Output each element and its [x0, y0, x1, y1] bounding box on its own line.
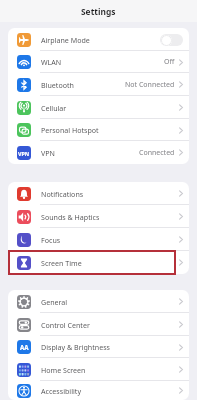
- staticText: VPN: [18, 150, 30, 157]
- staticText: Connected: [139, 148, 175, 158]
- button[interactable]: Personal Hotspot: [8, 119, 189, 141]
- staticText: Cellular: [41, 103, 67, 113]
- button[interactable]: Control Center: [8, 313, 189, 336]
- button[interactable]: Home Screen: [8, 358, 189, 381]
- staticText: Airplane Mode: [41, 35, 90, 45]
- button[interactable]: Focus: [8, 228, 189, 251]
- button[interactable]: VPN: [8, 141, 189, 164]
- button[interactable]: Bluetooth: [8, 73, 189, 96]
- staticText: Notifications: [41, 189, 84, 199]
- staticText: VPN: [41, 148, 55, 158]
- staticText: Control Center: [41, 320, 90, 330]
- staticText: Display & Brightness: [41, 342, 110, 352]
- button[interactable]: WLAN: [8, 51, 189, 73]
- staticText: Sounds & Haptics: [41, 212, 100, 222]
- staticText: Off: [164, 57, 175, 67]
- staticText: WLAN: [41, 57, 62, 67]
- staticText: Settings: [81, 6, 116, 17]
- button[interactable]: Accessibility: [8, 381, 189, 400]
- staticText: Screen Time: [41, 258, 82, 268]
- staticText: General: [41, 297, 68, 307]
- staticText: Focus: [41, 235, 61, 245]
- button[interactable]: AA: [8, 336, 189, 358]
- staticText: Not Connected: [125, 80, 175, 90]
- staticText: Personal Hotspot: [41, 125, 99, 135]
- staticText: Home Screen: [41, 365, 86, 375]
- button[interactable]: Cellular: [8, 96, 189, 119]
- button[interactable]: Airplane Mode: [8, 28, 189, 51]
- button[interactable]: General: [8, 290, 189, 313]
- staticText: AA: [20, 343, 29, 351]
- button[interactable]: Notifications: [8, 182, 189, 205]
- button[interactable]: Screen Time: [8, 251, 189, 274]
- staticText: Accessibility: [41, 386, 82, 396]
- staticText: Bluetooth: [41, 80, 74, 90]
- button[interactable]: Sounds & Haptics: [8, 205, 189, 228]
